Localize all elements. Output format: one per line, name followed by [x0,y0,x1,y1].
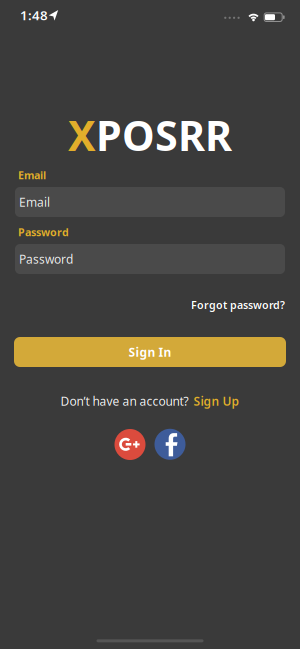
staticText: Email [19,194,50,210]
button[interactable]: Password [15,244,285,274]
staticText: Don’t have an account? [60,393,188,409]
staticText: 1:48 [20,6,48,24]
button[interactable]: Forgot password? [15,298,285,312]
staticText: Sign Up [193,393,239,409]
staticText: POSRR [96,108,232,162]
staticText: Email [18,168,46,182]
button[interactable] [154,429,185,460]
button[interactable] [114,429,145,460]
staticText: Password [19,251,73,267]
button[interactable]: Sign In [14,337,286,367]
button[interactable]: Email [15,187,285,217]
staticText: X [68,108,96,162]
staticText: Forgot password? [191,298,285,312]
staticText: Password [18,225,69,239]
staticText: Sign In [128,344,171,360]
button[interactable]: Sign Up [193,393,239,409]
